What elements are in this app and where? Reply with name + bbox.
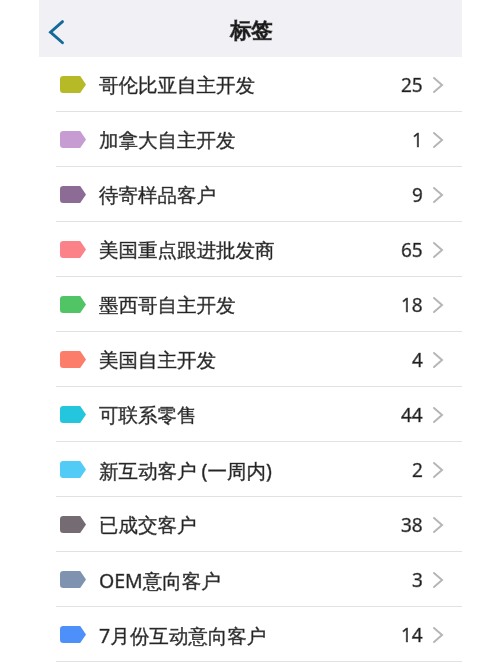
button[interactable]: 美国自主开发: [39, 332, 462, 387]
staticText: 标签: [230, 18, 272, 44]
staticText: 7月份互动意向客户: [99, 622, 267, 649]
staticText: 新互动客户 (一周内): [99, 457, 272, 484]
staticText: 美国自主开发: [99, 348, 216, 373]
staticText: OEM意向客户: [99, 567, 221, 594]
staticText: 2: [412, 457, 423, 483]
staticText: 7月份互动意向客户: [99, 622, 267, 649]
staticText: 待寄样品客户: [99, 183, 216, 208]
staticText: 44: [401, 402, 423, 428]
staticText: 1: [412, 127, 423, 153]
staticText: 待寄样品客户: [99, 183, 216, 208]
staticText: 新互动客户 (一周内): [99, 457, 272, 484]
staticText: 9: [412, 182, 423, 208]
staticText: 3: [412, 567, 423, 593]
staticText: 标签: [230, 18, 272, 44]
staticText: 65: [401, 237, 423, 263]
staticText: 4: [412, 347, 423, 373]
staticText: 2: [412, 457, 423, 483]
button[interactable]: 哥伦比亚自主开发: [39, 57, 462, 112]
staticText: 18: [401, 292, 423, 318]
button[interactable]: 加拿大自主开发: [39, 112, 462, 167]
staticText: 25: [401, 72, 423, 98]
staticText: 已成交客户: [99, 513, 197, 538]
staticText: 14: [401, 622, 423, 648]
staticText: OEM意向客户: [99, 567, 221, 594]
staticText: 墨西哥自主开发: [99, 293, 236, 318]
staticText: 9: [412, 182, 423, 208]
staticText: 加拿大自主开发: [99, 128, 236, 153]
button[interactable]: 可联系零售: [39, 387, 462, 442]
staticText: 已成交客户: [99, 513, 197, 538]
staticText: 18: [401, 292, 423, 318]
button[interactable]: 待寄样品客户: [39, 167, 462, 222]
staticText: 44: [401, 402, 423, 428]
staticText: 65: [401, 237, 423, 263]
staticText: 4: [412, 347, 423, 373]
staticText: 可联系零售: [99, 403, 197, 428]
staticText: 可联系零售: [99, 403, 197, 428]
button[interactable]: 7月份互动意向客户: [39, 607, 462, 662]
staticText: 25: [401, 72, 423, 98]
staticText: 1: [412, 127, 423, 153]
staticText: 哥伦比亚自主开发: [99, 73, 255, 98]
button[interactable]: 墨西哥自主开发: [39, 277, 462, 332]
button[interactable]: 美国重点跟进批发商: [39, 222, 462, 277]
button[interactable]: OEM意向客户: [39, 552, 462, 607]
staticText: 美国重点跟进批发商: [99, 238, 275, 263]
button[interactable]: 已成交客户: [39, 497, 462, 552]
staticText: 墨西哥自主开发: [99, 293, 236, 318]
staticText: 加拿大自主开发: [99, 128, 236, 153]
staticText: 3: [412, 567, 423, 593]
staticText: 38: [401, 512, 423, 538]
button[interactable]: 新互动客户 (一周内): [39, 442, 462, 497]
button[interactable]: Back: [39, 5, 83, 53]
staticText: 38: [401, 512, 423, 538]
staticText: 哥伦比亚自主开发: [99, 73, 255, 98]
staticText: 14: [401, 622, 423, 648]
staticText: 美国重点跟进批发商: [99, 238, 275, 263]
staticText: 美国自主开发: [99, 348, 216, 373]
